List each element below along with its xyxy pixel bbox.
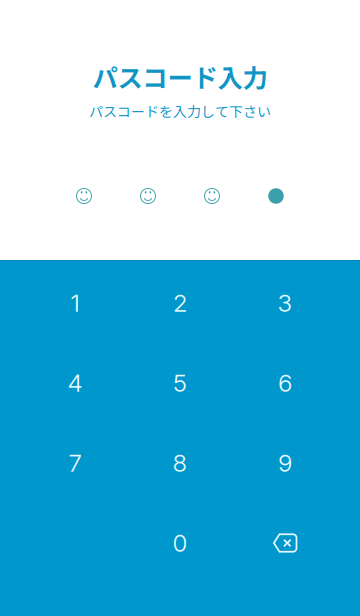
staticText: 4 <box>67 368 82 397</box>
staticText: 7 <box>68 448 81 477</box>
staticText: パスコードを入力して下さい <box>89 101 271 121</box>
staticText: 2 <box>173 288 187 317</box>
button[interactable]: 5 <box>127 343 232 423</box>
button[interactable]: 8 <box>127 423 232 503</box>
staticText: 5 <box>173 368 187 397</box>
button[interactable]: 6 <box>232 343 337 423</box>
staticText: 6 <box>278 368 292 397</box>
staticText: 1 <box>70 288 79 317</box>
button[interactable]: 0 <box>127 503 232 583</box>
staticText: 3 <box>277 288 292 317</box>
button[interactable]: 4 <box>22 343 127 423</box>
staticText: パスコード入力 <box>92 58 267 95</box>
button[interactable]: 削除 <box>232 503 337 583</box>
button[interactable]: 2 <box>127 263 232 343</box>
button[interactable]: 1 <box>22 263 127 343</box>
button[interactable]: 7 <box>22 423 127 503</box>
staticText: 9 <box>278 448 292 477</box>
staticText: 0 <box>172 528 187 557</box>
staticText: 8 <box>172 448 187 477</box>
button[interactable]: 3 <box>232 263 337 343</box>
button[interactable]: 9 <box>232 423 337 503</box>
